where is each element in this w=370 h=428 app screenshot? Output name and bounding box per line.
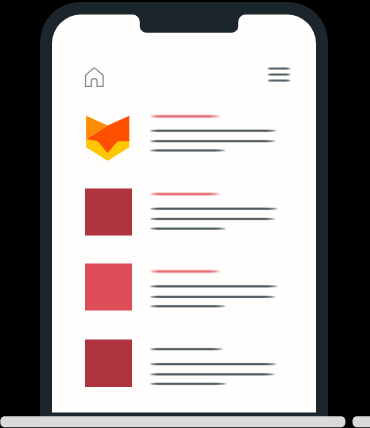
button[interactable]: Menu — [264, 62, 294, 88]
button[interactable]: Home — [84, 64, 106, 90]
